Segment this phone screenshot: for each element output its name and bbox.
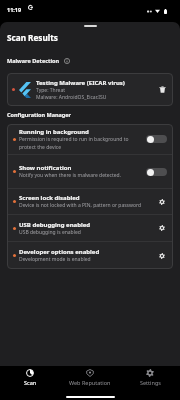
button[interactable]: Settings: [120, 366, 180, 388]
staticText: Permission is required to run in backgro…: [19, 136, 129, 150]
staticText: 11:19: [7, 6, 22, 13]
staticText: Settings: [140, 379, 161, 386]
staticText: Configuration Manager: [7, 111, 72, 118]
button[interactable]: Web Reputation: [60, 366, 120, 388]
staticText: Scan Results: [7, 32, 58, 43]
button[interactable]: Toggle: [146, 168, 167, 176]
button[interactable]: Delete: [151, 73, 173, 106]
button[interactable]: Running in background: [7, 124, 173, 154]
staticText: Scan: [24, 379, 37, 386]
button[interactable]: Scan: [0, 366, 60, 388]
staticText: Developer options enabled: [19, 248, 100, 256]
staticText: Development mode is enabled: [19, 256, 91, 263]
button[interactable]: Settings: [156, 222, 168, 234]
staticText: Web Reputation: [69, 379, 111, 386]
staticText: Screen lock disabled: [19, 194, 80, 202]
button[interactable]: Developer options enabled: [7, 242, 173, 269]
button[interactable]: Toggle: [146, 135, 167, 143]
button[interactable]: Show notification: [7, 155, 173, 188]
staticText: Malware Detection: [7, 57, 60, 64]
staticText: Malware: AndroidOS_Eicar.ISU: [36, 94, 107, 101]
button[interactable]: Settings: [156, 196, 168, 208]
button[interactable]: Screen lock disabled: [7, 189, 173, 214]
staticText: Device is not locked with a PIN, pattern…: [19, 202, 142, 209]
staticText: Notify you when there is malware detecte…: [19, 172, 122, 179]
staticText: Type: Threat: [36, 87, 66, 94]
button[interactable]: USB debugging enabled: [7, 215, 173, 241]
staticText: USB debugging enabled: [19, 221, 91, 229]
staticText: Testing Malware (EICAR virus): [36, 79, 125, 87]
staticText: USB debugging is enabled: [19, 229, 81, 236]
button[interactable]: Testing Malware (EICAR virus): [7, 73, 173, 106]
button[interactable]: Settings: [156, 250, 168, 262]
staticText: Running in background: [19, 128, 89, 136]
staticText: Show notification: [19, 164, 72, 172]
